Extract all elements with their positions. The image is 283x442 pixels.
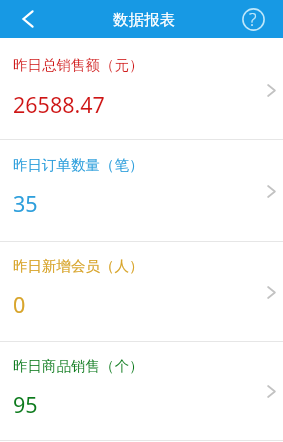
button[interactable]: 昨日总销售额（元） <box>0 38 283 139</box>
staticText: 昨日新增会员（人） <box>13 257 144 275</box>
staticText: 0 <box>13 290 26 319</box>
staticText: 昨日商品销售（个） <box>13 357 144 375</box>
button[interactable]: 昨日新增会员（人） <box>0 242 283 341</box>
staticText: 昨日总销售额（元） <box>13 56 144 74</box>
staticText: 昨日订单数量（笔） <box>13 156 144 174</box>
staticText: 35 <box>13 189 38 218</box>
staticText: ? <box>249 7 257 32</box>
button[interactable]: 昨日商品销售（个） <box>0 342 283 440</box>
button[interactable]: Back <box>0 0 50 38</box>
staticText: 数据报表 <box>113 10 175 30</box>
staticText: 26588.47 <box>13 90 105 119</box>
button[interactable]: Help <box>230 0 276 38</box>
staticText: 95 <box>13 390 38 419</box>
button[interactable]: 昨日订单数量（笔） <box>0 140 283 241</box>
